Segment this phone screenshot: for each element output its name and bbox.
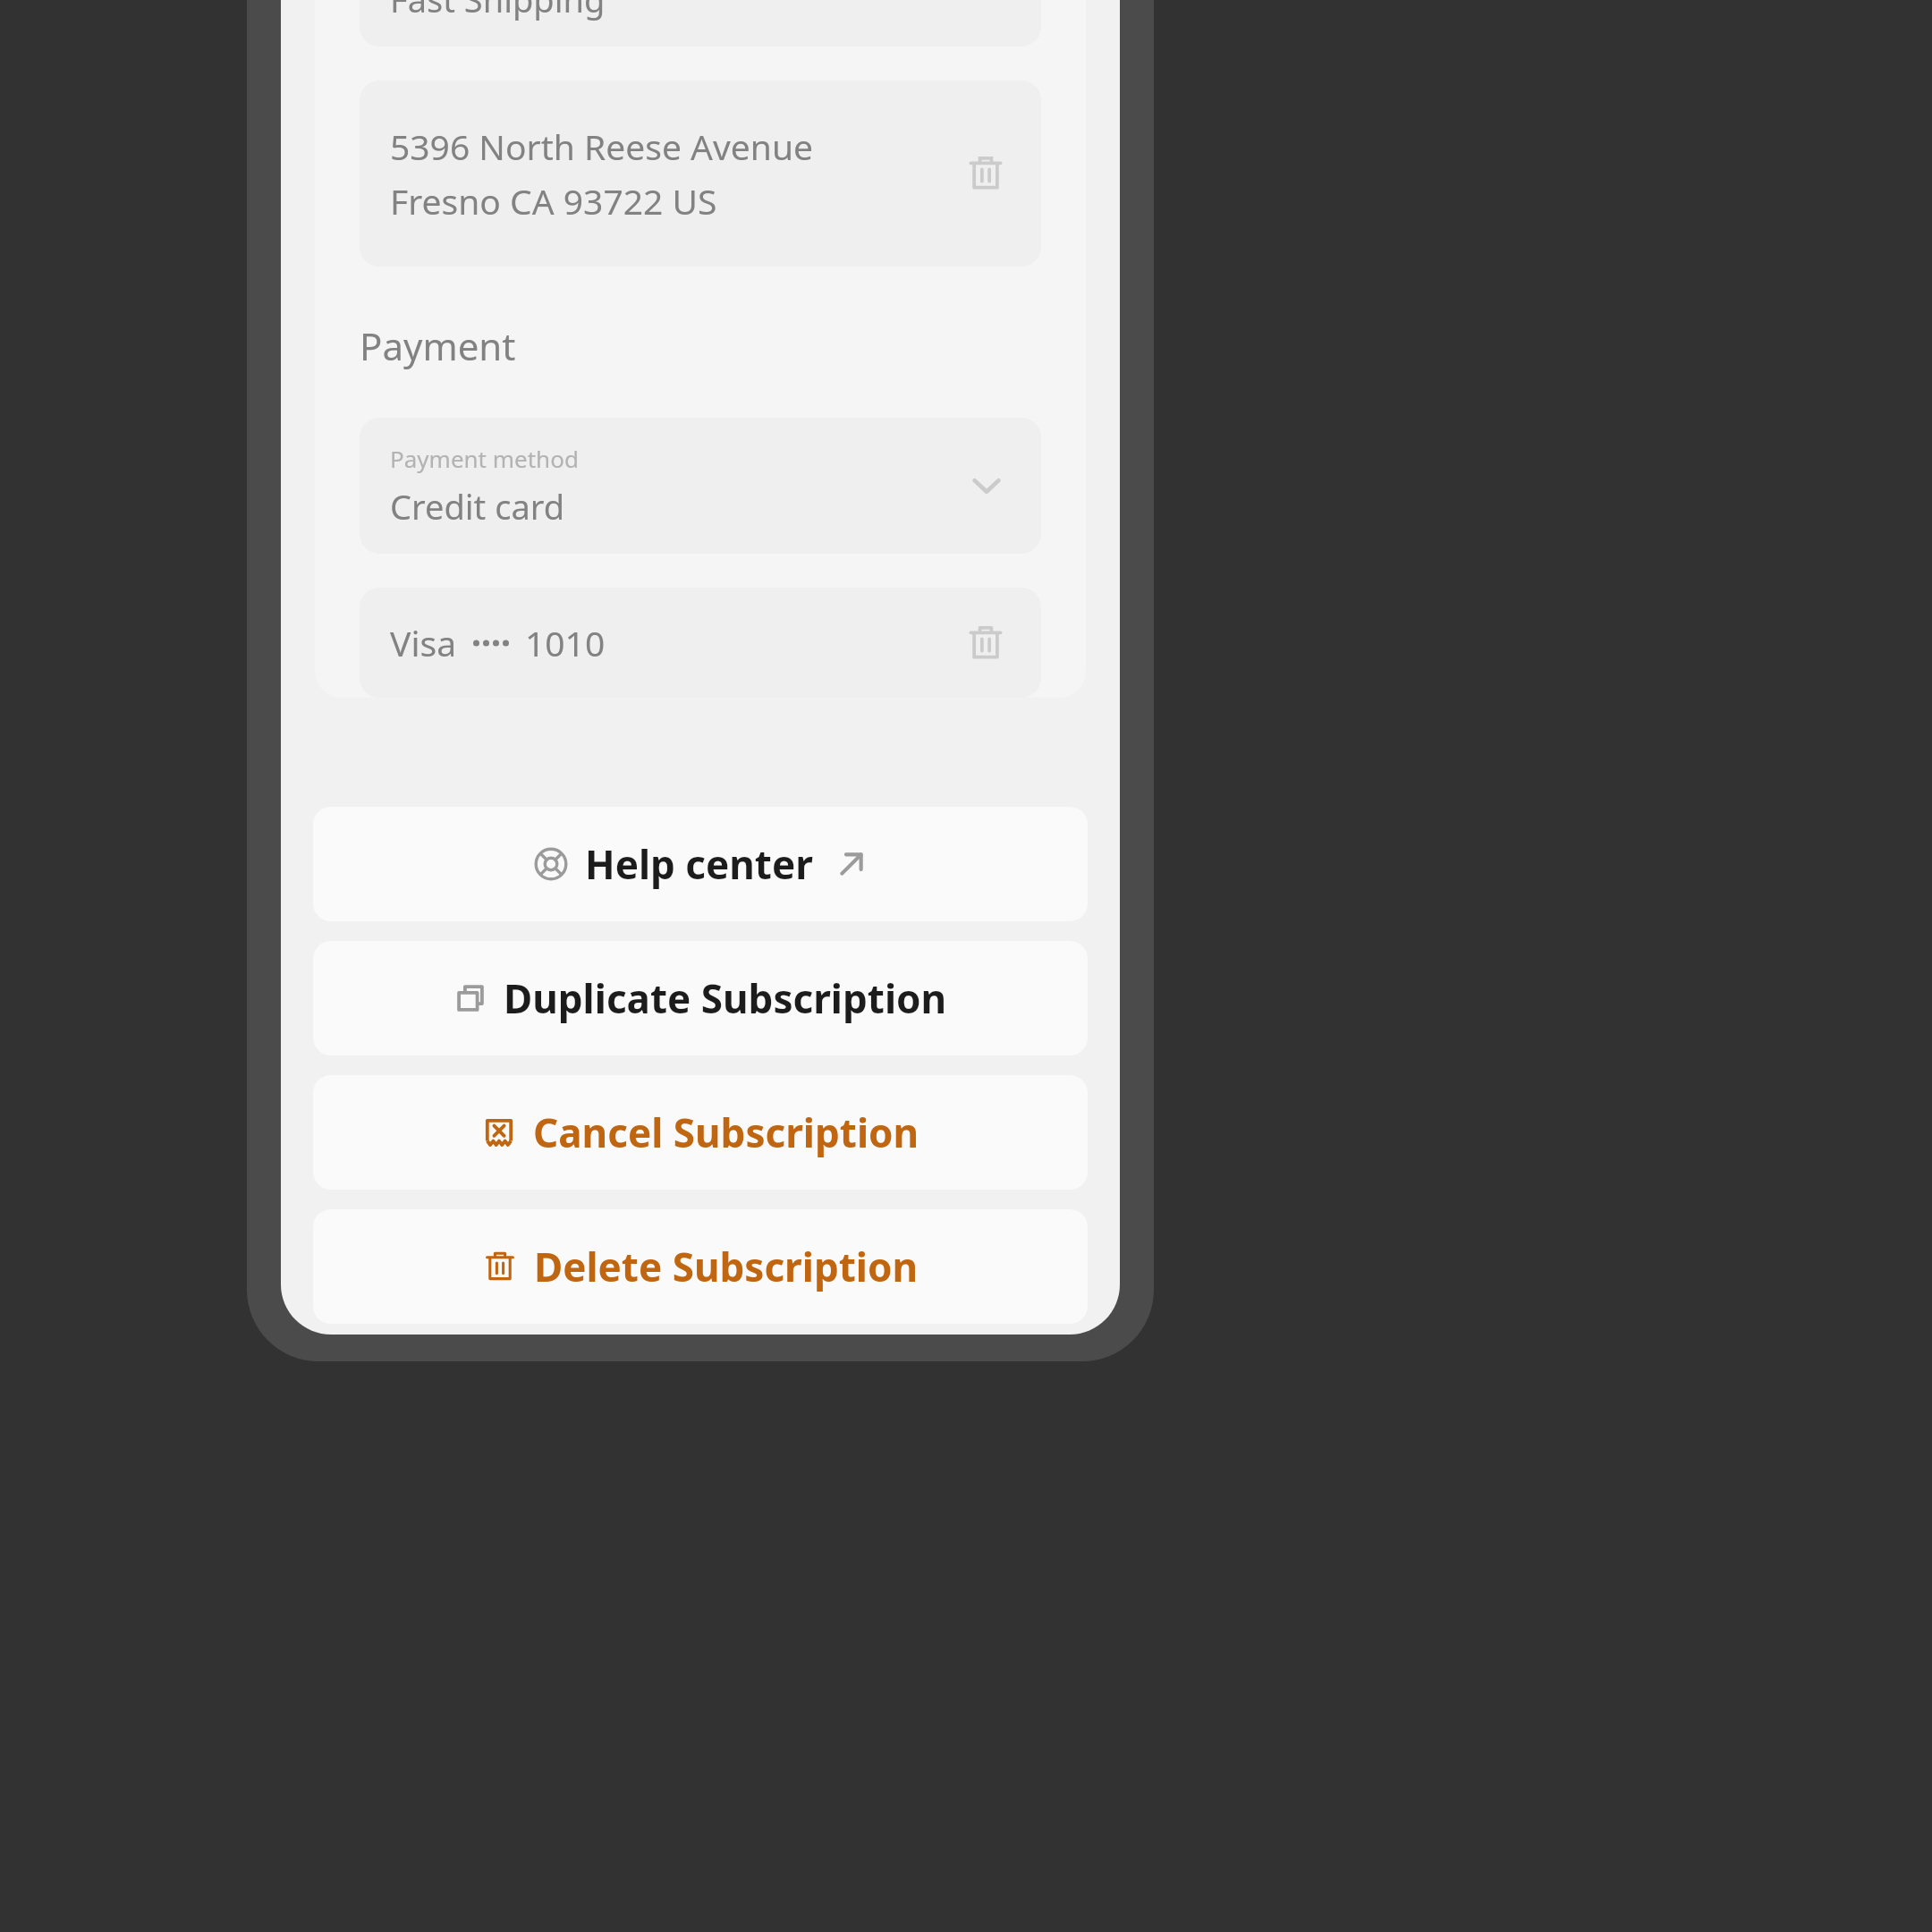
staticText: 5396 North Reese Avenue <box>390 123 814 170</box>
staticText: Fresno CA 93722 US <box>390 177 717 225</box>
staticText: Duplicate Subscription <box>504 971 947 1025</box>
staticText: Credit card <box>390 483 565 530</box>
staticText: 1010 <box>525 619 606 666</box>
button[interactable]: Change payment method <box>959 458 1014 513</box>
button[interactable]: Delete address <box>957 145 1014 202</box>
staticText: Delete Subscription <box>534 1240 919 1293</box>
staticText: Help center <box>585 837 813 891</box>
button[interactable]: Delete card <box>957 614 1014 672</box>
button[interactable]: Payment method <box>360 418 1041 554</box>
button[interactable]: 5396 North Reese Avenue <box>360 80 1041 267</box>
button[interactable]: Visa <box>360 588 1041 698</box>
staticText: Payment <box>360 320 516 371</box>
button[interactable]: Delete Subscription <box>313 1209 1088 1324</box>
button[interactable]: Duplicate Subscription <box>313 941 1088 1055</box>
button[interactable]: Help center <box>313 807 1088 921</box>
staticText: Fast Shipping <box>390 0 606 22</box>
button[interactable]: Cancel Subscription <box>313 1075 1088 1190</box>
staticText: Payment method <box>390 443 579 474</box>
button[interactable]: Delivery method <box>360 0 1041 47</box>
staticText: Visa <box>390 619 457 666</box>
staticText: Cancel Subscription <box>533 1106 919 1159</box>
